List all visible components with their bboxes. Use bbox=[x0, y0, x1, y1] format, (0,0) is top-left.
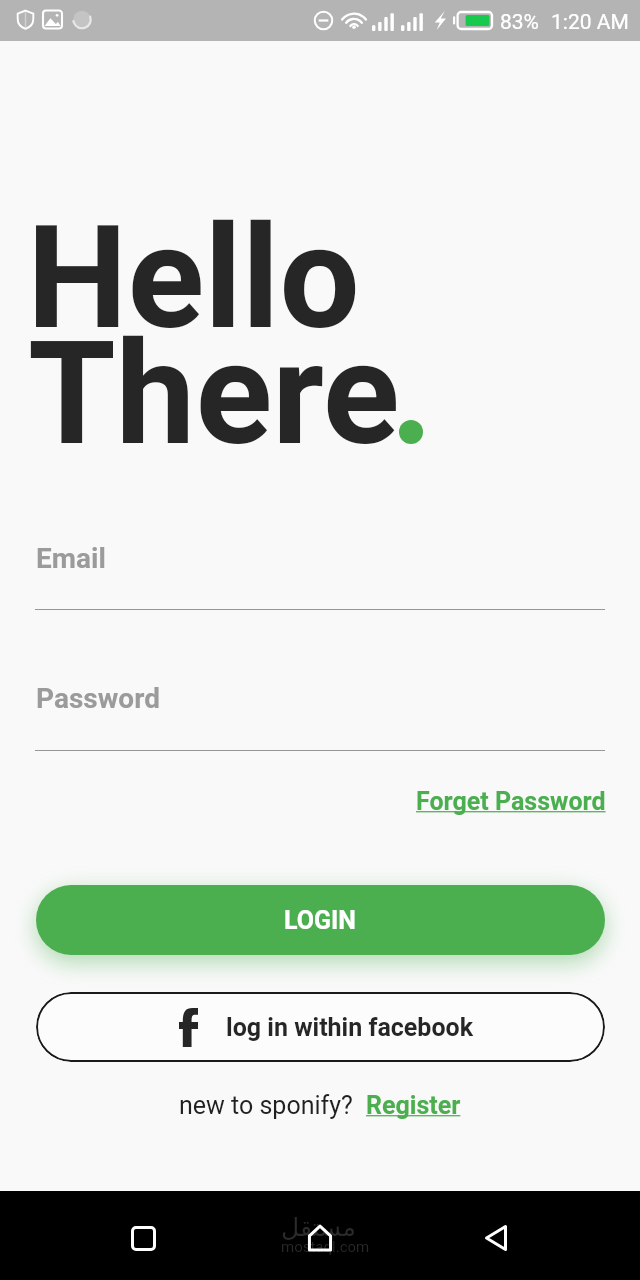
staticText: mostaql.com bbox=[281, 1238, 370, 1256]
button[interactable]: Register bbox=[366, 1091, 461, 1120]
staticText: Hello bbox=[27, 195, 360, 361]
staticText: log in within facebook bbox=[226, 1013, 474, 1042]
staticText: Password bbox=[36, 682, 160, 715]
staticText: Forget Password bbox=[416, 787, 606, 816]
button[interactable]: Home bbox=[284, 1202, 356, 1274]
staticText: new to sponify? bbox=[179, 1091, 353, 1120]
button[interactable]: LOGIN bbox=[36, 885, 605, 955]
button[interactable]: Forget Password bbox=[416, 787, 606, 816]
staticText: 1:20 AM bbox=[551, 10, 629, 35]
staticText: Register bbox=[366, 1091, 461, 1120]
staticText: 83% bbox=[500, 10, 539, 35]
button[interactable]: Recent apps bbox=[107, 1202, 179, 1274]
staticText: مستقل bbox=[281, 1213, 356, 1242]
button[interactable]: log in within facebook bbox=[36, 992, 605, 1062]
staticText: Email bbox=[36, 542, 106, 575]
staticText: LOGIN bbox=[284, 906, 357, 935]
button[interactable]: Back bbox=[460, 1202, 532, 1274]
staticText: There bbox=[28, 311, 400, 477]
